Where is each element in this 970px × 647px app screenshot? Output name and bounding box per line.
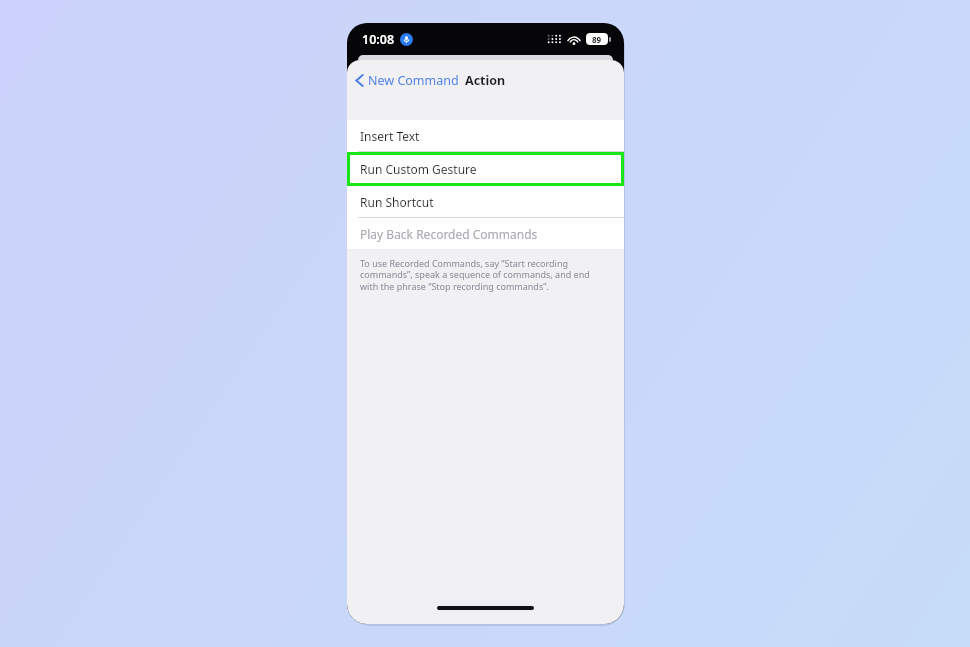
staticText: 10:08 (362, 31, 395, 48)
staticText: New Command (368, 72, 459, 89)
staticText: Insert Text (360, 128, 420, 144)
staticText: Run Shortcut (360, 194, 434, 210)
staticText: Play Back Recorded Commands (360, 226, 538, 242)
button[interactable]: Run Custom Gesture (347, 152, 624, 186)
staticText: 89 (592, 34, 602, 45)
button[interactable]: New Command (347, 68, 467, 93)
button[interactable]: Run Shortcut (347, 186, 624, 218)
staticText: To use Recorded Commands, say “Start rec… (360, 257, 610, 293)
staticText: Run Custom Gesture (360, 161, 477, 177)
other: Home (437, 606, 534, 610)
staticText: Action (465, 72, 506, 89)
button[interactable]: Insert Text (347, 120, 624, 152)
button[interactable]: Play Back Recorded Commands (347, 218, 624, 249)
